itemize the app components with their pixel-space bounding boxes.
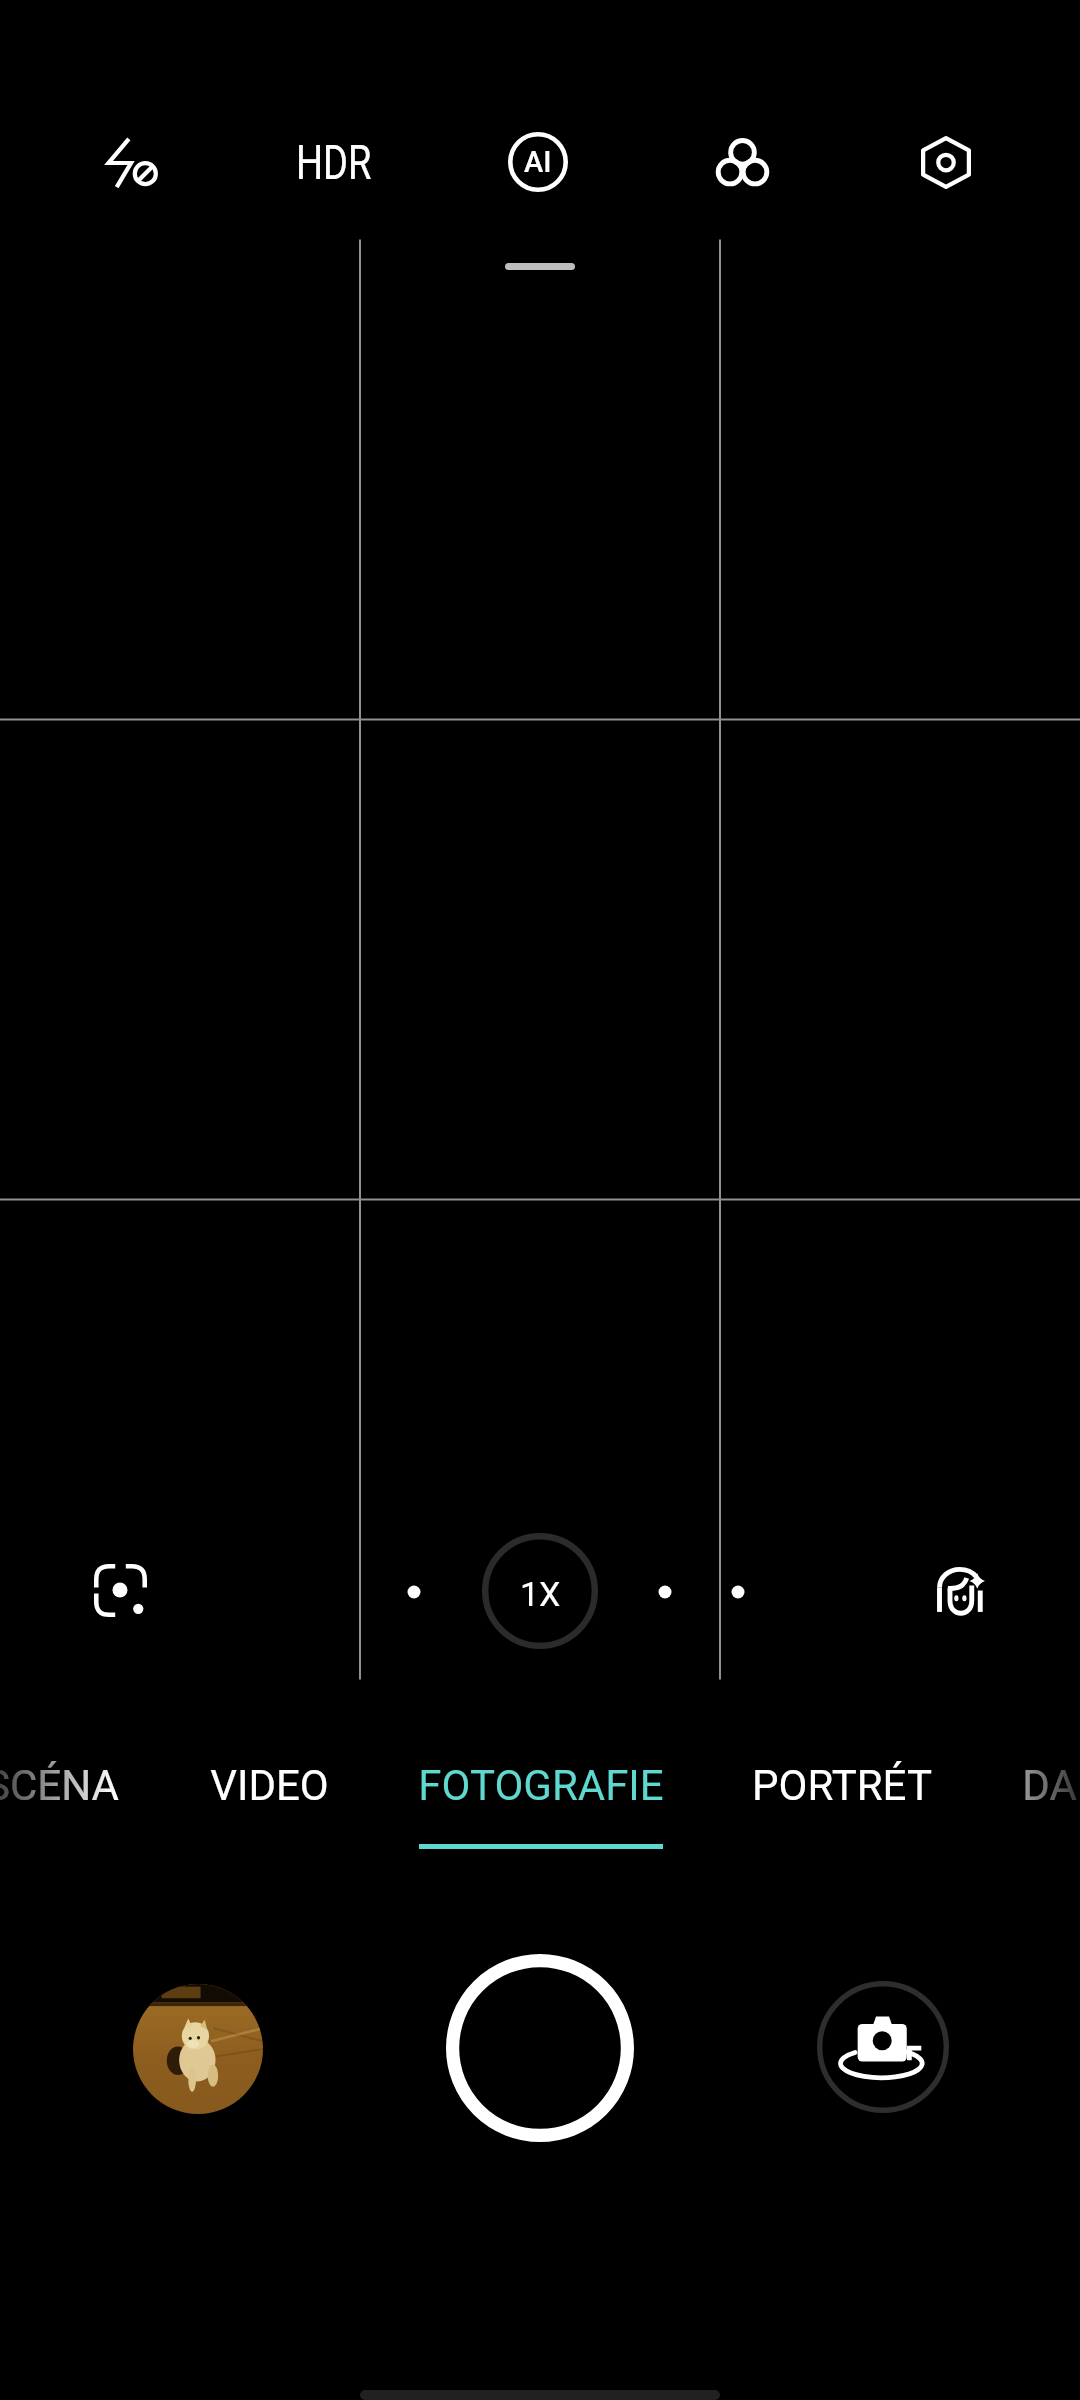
button[interactable]: PORTRÉT — [738, 1761, 946, 1891]
button[interactable]: AI scene detection — [488, 112, 588, 212]
button[interactable]: Beauty — [917, 1547, 1003, 1633]
staticText: VIDEO — [210, 1761, 329, 1810]
button[interactable]: Switch camera — [817, 1981, 949, 2113]
staticText: DALŠÍ — [1022, 1761, 1080, 1810]
staticText: PORTRÉT — [752, 1761, 932, 1810]
button[interactable]: SCÉNA — [0, 1761, 134, 1891]
button[interactable]: DALŠÍ — [1007, 1761, 1080, 1891]
button[interactable]: Zoom 1X — [482, 1533, 598, 1649]
button[interactable]: Settings — [896, 112, 996, 212]
button[interactable]: HDR — [274, 117, 394, 207]
staticText: AI — [524, 145, 552, 179]
button[interactable]: Lens scan — [77, 1547, 163, 1633]
button[interactable]: Flash off — [76, 108, 186, 218]
button[interactable]: Filters — [692, 112, 792, 212]
button[interactable]: FOTOGRAFIE — [404, 1761, 677, 1891]
staticText: SCÉNA — [0, 1761, 119, 1810]
staticText: HDR — [296, 134, 372, 190]
button[interactable]: VIDEO — [195, 1761, 343, 1891]
button[interactable]: Gallery — [133, 1984, 263, 2114]
staticText: 1X — [520, 1574, 561, 1614]
button[interactable]: Take photo — [446, 1954, 634, 2142]
staticText: FOTOGRAFIE — [418, 1761, 664, 1810]
